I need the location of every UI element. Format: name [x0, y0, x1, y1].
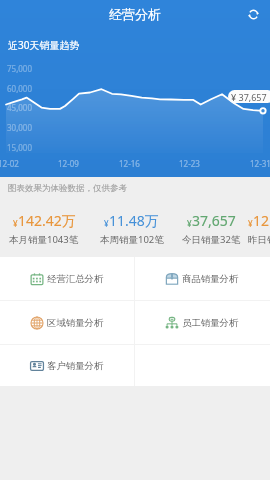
- staticText: ¥: [187, 218, 192, 229]
- staticText: 12-09: [58, 158, 79, 169]
- staticText: 12-31: [250, 158, 270, 169]
- staticText: 12-23: [179, 158, 200, 169]
- staticText: 15,000: [7, 142, 33, 153]
- button[interactable]: ¥: [0, 199, 88, 257]
- staticText: 本周销量102笔: [100, 233, 164, 246]
- staticText: ¥ 37,657: [231, 91, 267, 103]
- staticText: 本月销量1043笔: [9, 233, 79, 246]
- staticText: 近30天销量趋势: [8, 38, 80, 52]
- button[interactable]: 区域销量分析: [0, 301, 134, 344]
- button[interactable]: 经营汇总分析: [0, 257, 134, 300]
- staticText: 12.4万: [253, 211, 270, 230]
- staticText: 30,000: [7, 122, 33, 133]
- button[interactable]: ¥: [175, 199, 248, 257]
- staticText: 11.48万: [109, 211, 159, 230]
- staticText: 142.42万: [18, 211, 76, 230]
- staticText: 图表效果为体验数据，仅供参考: [8, 183, 127, 194]
- staticText: 经营汇总分析: [47, 273, 104, 285]
- staticText: 客户销量分析: [47, 360, 104, 372]
- staticText: 37,657: [192, 211, 236, 230]
- staticText: ¥: [104, 218, 109, 229]
- button[interactable]: 员工销量分析: [135, 301, 270, 344]
- staticText: 昨日销量65笔: [248, 233, 270, 246]
- staticText: 12-02: [0, 158, 19, 169]
- staticText: 经营分析: [109, 6, 161, 22]
- staticText: ¥: [248, 218, 253, 229]
- staticText: 员工销量分析: [182, 317, 239, 329]
- staticText: 区域销量分析: [47, 317, 104, 329]
- staticText: ¥: [13, 218, 18, 229]
- button[interactable]: ¥: [88, 199, 175, 257]
- staticText: 60,000: [7, 83, 33, 94]
- button[interactable]: 客户销量分析: [0, 345, 134, 386]
- staticText: 今日销量32笔: [182, 233, 241, 246]
- button[interactable]: 商品销量分析: [135, 257, 270, 300]
- staticText: 商品销量分析: [182, 273, 239, 285]
- staticText: 75,000: [7, 63, 33, 74]
- staticText: 12-16: [119, 158, 140, 169]
- staticText: 45,000: [7, 102, 33, 113]
- button[interactable]: ¥: [248, 199, 270, 257]
- button[interactable]: Refresh: [243, 4, 263, 24]
